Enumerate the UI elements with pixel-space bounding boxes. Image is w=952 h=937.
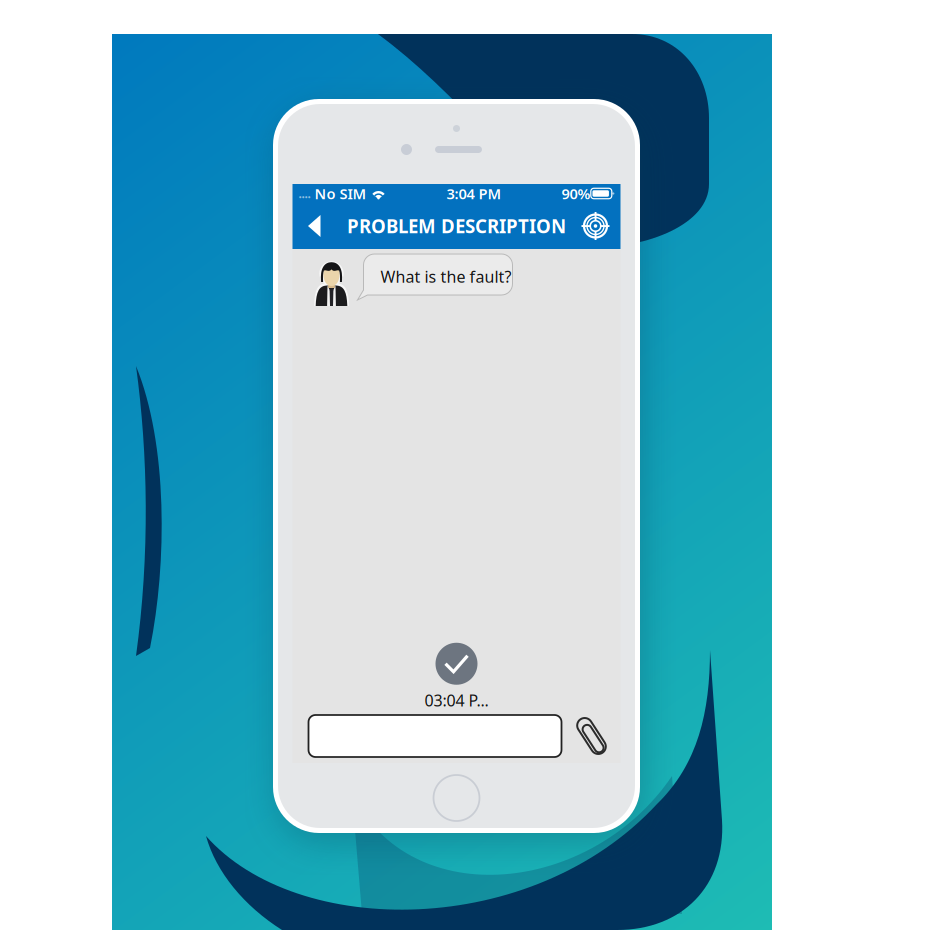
button[interactable]: Message — [308, 715, 561, 757]
staticText: PROBLEM DESCRIPTION — [347, 214, 566, 238]
button[interactable]: Back — [299, 207, 329, 245]
staticText: What is the fault? — [380, 266, 511, 287]
staticText: .... — [298, 185, 310, 201]
button[interactable]: Locate — [577, 208, 613, 244]
button[interactable]: Attach — [574, 713, 608, 759]
staticText: 03:04 P... — [424, 690, 488, 711]
staticText: 3:04 PM — [446, 184, 501, 203]
staticText: 90% — [561, 184, 590, 203]
staticText: No SIM — [310, 184, 370, 203]
